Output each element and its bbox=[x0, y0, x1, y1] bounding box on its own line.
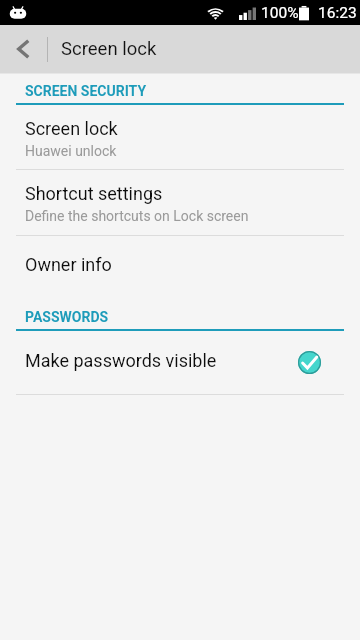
staticText: Owner info bbox=[25, 254, 112, 275]
button[interactable]: Back bbox=[0, 25, 46, 73]
staticText: Huawei unlock bbox=[25, 143, 117, 159]
staticText: SCREEN SECURITY bbox=[25, 83, 147, 99]
staticText: Shortcut settings bbox=[25, 183, 163, 204]
staticText: Screen lock bbox=[25, 118, 118, 139]
staticText: PASSWORDS bbox=[25, 309, 109, 325]
staticText: 16:23 bbox=[318, 4, 357, 22]
staticText: Screen lock bbox=[61, 38, 157, 60]
staticText: Define the shortcuts on Lock screen bbox=[25, 208, 249, 224]
staticText: Make passwords visible bbox=[25, 350, 217, 371]
button[interactable]: Shortcut settings bbox=[0, 170, 360, 235]
button[interactable]: Owner info bbox=[0, 236, 360, 289]
staticText: 100% bbox=[261, 4, 299, 22]
button[interactable]: Make passwords visible bbox=[0, 331, 360, 394]
button[interactable]: Screen lock bbox=[0, 105, 360, 169]
